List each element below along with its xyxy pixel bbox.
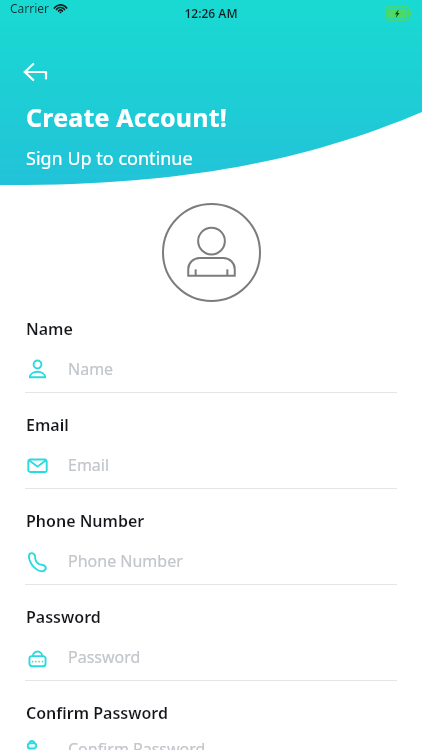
button[interactable]: Confirm Password [0, 702, 422, 750]
staticText: Email [26, 414, 69, 436]
button[interactable]: Back [18, 52, 58, 92]
button[interactable]: Phone Number [0, 510, 422, 606]
staticText: Carrier [10, 0, 50, 16]
staticText: Password [26, 606, 101, 628]
staticText: Phone Number [26, 510, 145, 532]
button[interactable]: Name [0, 318, 422, 414]
staticText: Phone Number [68, 550, 183, 572]
staticText: Email [68, 454, 110, 476]
button[interactable]: Email [0, 414, 422, 510]
staticText: Name [26, 318, 73, 340]
staticText: Confirm Password [68, 738, 206, 750]
staticText: 12:26 AM [184, 5, 238, 21]
staticText: Create Account! [26, 100, 228, 134]
staticText: Password [68, 646, 141, 668]
staticText: Confirm Password [26, 702, 168, 724]
staticText: Sign Up to continue [26, 146, 193, 171]
staticText: Name [68, 358, 114, 380]
button[interactable]: Password [0, 606, 422, 702]
